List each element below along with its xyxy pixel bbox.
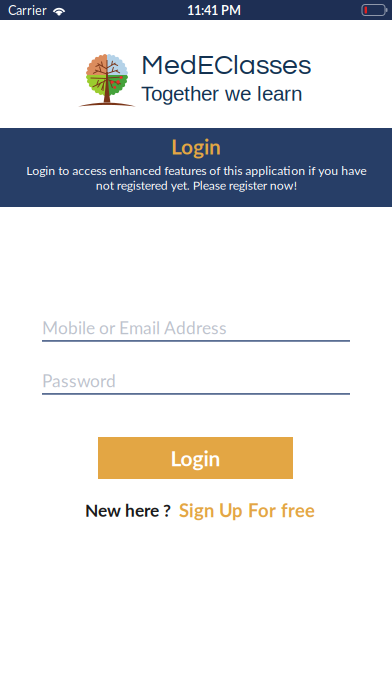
staticText: Carrier: [8, 2, 47, 18]
staticText: Password: [42, 370, 116, 391]
staticText: Mobile or Email Address: [42, 317, 227, 338]
staticText: New here ?: [85, 500, 171, 520]
staticText: Login: [171, 134, 221, 159]
button[interactable]: Sign Up For free: [179, 499, 315, 521]
staticText: Login: [170, 445, 220, 471]
staticText: Together we learn: [141, 82, 302, 105]
button[interactable]: Login: [98, 437, 293, 479]
staticText: 11:41 PM: [187, 2, 241, 18]
staticText: MedEClasses: [141, 51, 311, 80]
staticText: Sign Up For free: [179, 499, 315, 521]
staticText: Login to access enhanced features of thi…: [26, 163, 366, 192]
